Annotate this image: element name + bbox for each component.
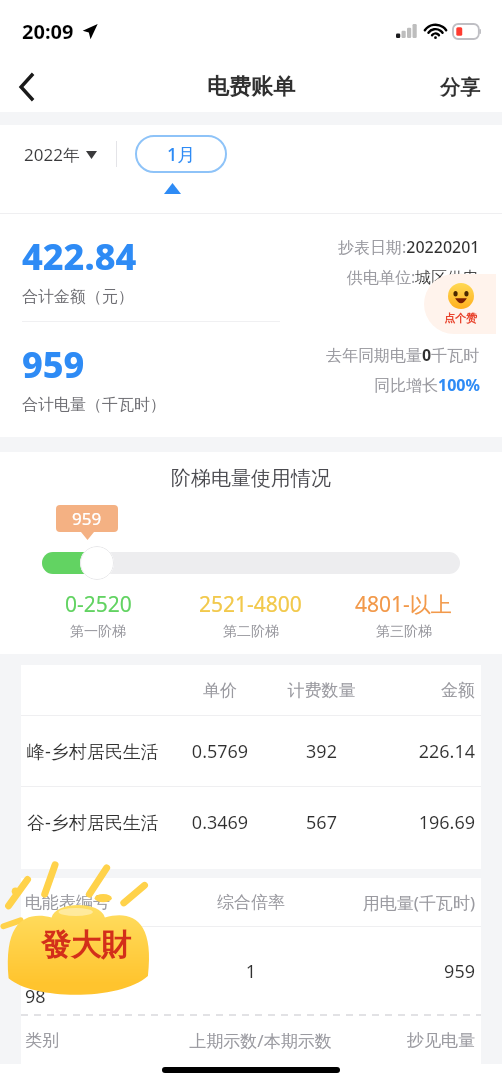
staticText: 4801-以上 bbox=[355, 590, 452, 619]
staticText: 發大財 bbox=[41, 926, 131, 964]
staticText: 阶梯电量使用情况 bbox=[0, 466, 502, 491]
staticText: 392 bbox=[267, 739, 376, 764]
staticText: 电费账单 bbox=[207, 73, 295, 101]
staticText: 1月 bbox=[167, 142, 196, 167]
staticText: 第一阶梯 bbox=[70, 623, 126, 641]
staticText: 226.14 bbox=[376, 739, 475, 764]
staticText: 用电量(千瓦时) bbox=[315, 891, 475, 914]
staticText: 金额 bbox=[376, 680, 475, 701]
staticText: 抄表日期:20220201 bbox=[338, 236, 480, 258]
other: 發大財 bbox=[0, 862, 172, 1008]
button[interactable]: 点个赞 bbox=[424, 274, 496, 334]
button[interactable]: Back bbox=[0, 62, 52, 112]
staticText: 0.3469 bbox=[173, 810, 267, 835]
staticText: 959 bbox=[315, 959, 475, 984]
staticText: 分享 bbox=[440, 75, 480, 100]
staticText: 1 bbox=[187, 959, 315, 984]
button[interactable]: 2022年 bbox=[22, 137, 99, 172]
staticText: 综合倍率 bbox=[187, 892, 315, 913]
button[interactable]: 谷-乡村居民生活 bbox=[21, 787, 481, 857]
button[interactable]: 1月 bbox=[135, 135, 227, 173]
staticText: 第二阶梯 bbox=[223, 623, 279, 641]
staticText: 单价 bbox=[173, 680, 267, 701]
staticText: 计费数量 bbox=[267, 680, 376, 701]
staticText: 类别 bbox=[25, 1030, 165, 1051]
staticText: 98 bbox=[25, 984, 46, 1009]
staticText: 959 bbox=[72, 507, 102, 530]
staticText: 合计电量（千瓦时） bbox=[22, 395, 166, 415]
staticText: 0.5769 bbox=[173, 739, 267, 764]
staticText: 上期示数/本期示数 bbox=[165, 1029, 356, 1052]
button[interactable]: 分享 bbox=[436, 69, 484, 106]
staticText: 点个赞 bbox=[444, 311, 477, 325]
staticText: 196.69 bbox=[376, 810, 475, 835]
staticText: 2521-4800 bbox=[199, 590, 302, 619]
button[interactable]: 峰-乡村居民生活 bbox=[21, 716, 481, 786]
staticText: 电能表编号 bbox=[25, 892, 187, 913]
staticText: 第三阶梯 bbox=[376, 623, 432, 641]
button[interactable] bbox=[80, 546, 114, 580]
staticText: 2 bbox=[25, 934, 36, 959]
staticText: 合计金额（元） bbox=[22, 287, 134, 307]
staticText: 567 bbox=[267, 810, 376, 835]
staticText: 2022年 bbox=[24, 143, 80, 166]
staticText: 0 bbox=[25, 959, 36, 984]
staticText: 峰-乡村居民生活 bbox=[27, 739, 173, 764]
staticText: 同比增长100% bbox=[374, 374, 480, 396]
staticText: 供电单位:城区供电 bbox=[347, 266, 480, 288]
staticText: 抄见电量 bbox=[356, 1030, 475, 1051]
staticText: 谷-乡村居民生活 bbox=[27, 810, 173, 835]
staticText: 959 bbox=[22, 340, 85, 389]
staticText: 0-2520 bbox=[65, 590, 132, 619]
staticText: 422.84 bbox=[22, 232, 137, 281]
staticText: 去年同期电量0千瓦时 bbox=[326, 344, 480, 366]
button[interactable]: 2 bbox=[21, 927, 481, 1015]
staticText: 20:09 bbox=[22, 18, 74, 45]
